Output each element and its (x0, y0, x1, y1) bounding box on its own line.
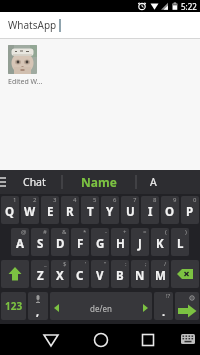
staticText: 2 (33, 196, 37, 204)
staticText: J (138, 236, 142, 252)
button[interactable]: E (41, 196, 59, 224)
button[interactable]: K (151, 228, 169, 256)
button[interactable]: A (11, 228, 29, 256)
staticText: + (123, 228, 127, 236)
button[interactable]: I (141, 196, 159, 224)
staticText: C (76, 268, 84, 284)
button[interactable]: H (111, 228, 129, 256)
button[interactable]: A (140, 170, 166, 194)
button[interactable] (36, 324, 66, 354)
button[interactable]: U (121, 196, 139, 224)
staticText: . (162, 304, 166, 319)
staticText: 3 (53, 196, 57, 204)
staticText: 4 (73, 196, 77, 204)
staticText: K (156, 236, 164, 252)
staticText: H (116, 236, 125, 252)
staticText: 6 (113, 196, 117, 204)
button[interactable] (178, 329, 198, 349)
button[interactable]: L (171, 228, 189, 256)
staticText: # (43, 228, 47, 236)
staticText: Z (37, 268, 44, 284)
button[interactable]: J (131, 228, 149, 256)
staticText: ; (145, 260, 147, 268)
button[interactable]: S (31, 228, 49, 256)
staticText: * (83, 228, 87, 236)
staticText: O (165, 204, 175, 220)
button[interactable]: P (181, 196, 199, 224)
button[interactable]: 123 (1, 292, 26, 320)
staticText: X (56, 268, 64, 284)
staticText: Edited W... (8, 77, 43, 87)
button[interactable]: D (51, 228, 69, 256)
button[interactable]: de/en (50, 292, 152, 320)
button[interactable]: C (71, 260, 89, 288)
staticText: N (135, 268, 145, 284)
button[interactable]: B (111, 260, 129, 288)
staticText: Q (5, 204, 15, 220)
staticText: : (125, 260, 127, 268)
staticText: S (37, 236, 44, 252)
button[interactable]: Z (31, 260, 49, 288)
button[interactable] (175, 292, 199, 320)
staticText: D (56, 236, 65, 252)
staticText: Name (81, 174, 117, 190)
staticText: - (105, 228, 107, 236)
button[interactable]: Q (1, 196, 19, 224)
staticText: 5 (93, 196, 97, 204)
button[interactable]: V (91, 260, 109, 288)
staticText: B (116, 268, 124, 284)
button[interactable]: O (161, 196, 179, 224)
staticText: T (87, 204, 94, 220)
staticText: 0 (193, 196, 197, 204)
staticText: P (186, 204, 194, 220)
staticText: W (24, 204, 36, 220)
staticText: A (150, 175, 157, 189)
staticText: E (47, 204, 54, 220)
button[interactable]: T (81, 196, 99, 224)
staticText: F (77, 236, 84, 252)
staticText: $ (63, 260, 67, 268)
staticText: 1 (13, 196, 17, 204)
staticText: !? (166, 292, 171, 300)
staticText: ( (165, 228, 167, 236)
staticText: 5:22 (181, 1, 197, 12)
staticText: 9 (173, 196, 177, 204)
staticText: WhatsApp (8, 18, 57, 32)
staticText: / (164, 260, 167, 268)
button[interactable] (86, 324, 116, 354)
staticText: I (148, 204, 153, 220)
button[interactable]: Y (101, 196, 119, 224)
staticText: " (104, 260, 107, 268)
staticText: Chat (23, 175, 46, 189)
button[interactable]: G (91, 228, 109, 256)
button[interactable] (133, 324, 163, 354)
button[interactable]: M (151, 260, 169, 288)
staticText: L (177, 236, 184, 252)
staticText: ' (85, 260, 87, 268)
staticText: 7 (133, 196, 137, 204)
staticText: 123 (5, 299, 23, 313)
staticText: de/en (90, 303, 112, 314)
staticText: 8 (153, 196, 157, 204)
button[interactable] (8, 45, 37, 74)
button[interactable]: !? (154, 292, 173, 320)
button[interactable]: Chat (14, 170, 54, 194)
staticText: R (66, 204, 74, 220)
button[interactable]: , (28, 292, 48, 320)
button[interactable]: R (61, 196, 79, 224)
staticText: A (16, 236, 24, 252)
staticText: G (96, 236, 105, 252)
staticText: _ (44, 260, 47, 268)
button[interactable] (1, 260, 29, 288)
button[interactable]: X (51, 260, 69, 288)
staticText: M (155, 268, 166, 284)
staticText: @ (21, 228, 27, 236)
staticText: & (62, 228, 67, 236)
button[interactable]: N (131, 260, 149, 288)
staticText: ) (185, 228, 187, 236)
staticText: V (96, 268, 104, 284)
button[interactable] (171, 260, 199, 288)
button[interactable]: F (71, 228, 89, 256)
button[interactable]: W (21, 196, 39, 224)
button[interactable]: Name (70, 170, 128, 194)
